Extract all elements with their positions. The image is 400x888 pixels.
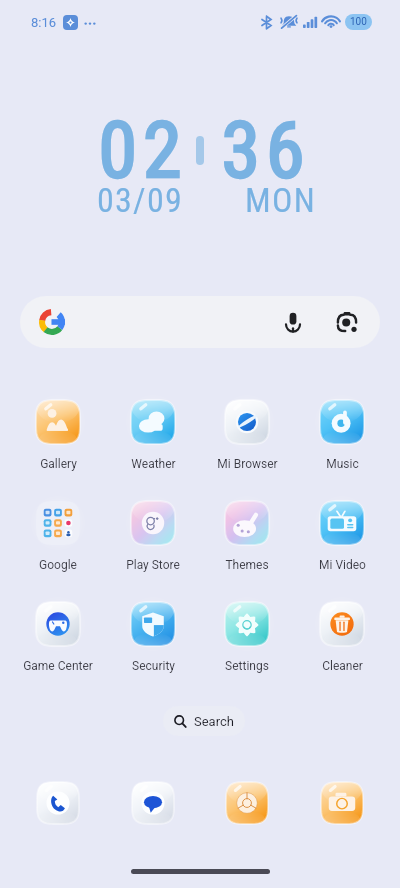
button[interactable]: Google Lens <box>334 309 360 335</box>
button[interactable]: Music <box>297 394 387 471</box>
button[interactable]: Settings <box>202 596 292 673</box>
staticText: Play Store <box>126 558 180 572</box>
staticText: 02 <box>98 105 188 196</box>
staticText: Search <box>194 714 234 729</box>
staticText: MON <box>245 180 316 220</box>
button[interactable]: Search <box>163 706 245 736</box>
button[interactable]: Voice search <box>20 296 380 348</box>
button[interactable]: Google <box>13 495 103 572</box>
staticText: Weather <box>131 457 176 471</box>
button[interactable]: Game Center <box>13 596 103 673</box>
button[interactable]: Mi Browser <box>202 394 292 471</box>
button[interactable]: Play Store <box>108 495 198 572</box>
staticText: Google <box>39 558 77 572</box>
button[interactable]: Messages <box>132 782 174 824</box>
staticText: 36 <box>221 105 311 196</box>
staticText: Security <box>132 659 175 673</box>
button[interactable]: Voice search <box>280 309 306 335</box>
staticText: Themes <box>225 558 269 572</box>
button[interactable]: Phone <box>37 782 79 824</box>
staticText: Mi Browser <box>217 457 278 471</box>
button[interactable]: Security <box>108 596 198 673</box>
button[interactable]: Camera <box>321 782 363 824</box>
staticText: Cleaner <box>322 659 363 673</box>
button[interactable]: Cleaner <box>297 596 387 673</box>
staticText: Settings <box>225 659 269 673</box>
button[interactable]: Weather <box>108 394 198 471</box>
button[interactable]: Chrome <box>226 782 268 824</box>
staticText: 100 <box>350 16 367 28</box>
staticText: 03/09 <box>97 180 183 220</box>
button[interactable]: Mi Video <box>297 495 387 572</box>
staticText: Game Center <box>23 659 93 673</box>
staticText: Mi Video <box>319 558 366 572</box>
staticText: Music <box>326 457 359 471</box>
button[interactable]: Gallery <box>13 394 103 471</box>
staticText: Gallery <box>40 457 77 471</box>
staticText: 8:16 <box>31 15 57 30</box>
button[interactable]: Themes <box>202 495 292 572</box>
